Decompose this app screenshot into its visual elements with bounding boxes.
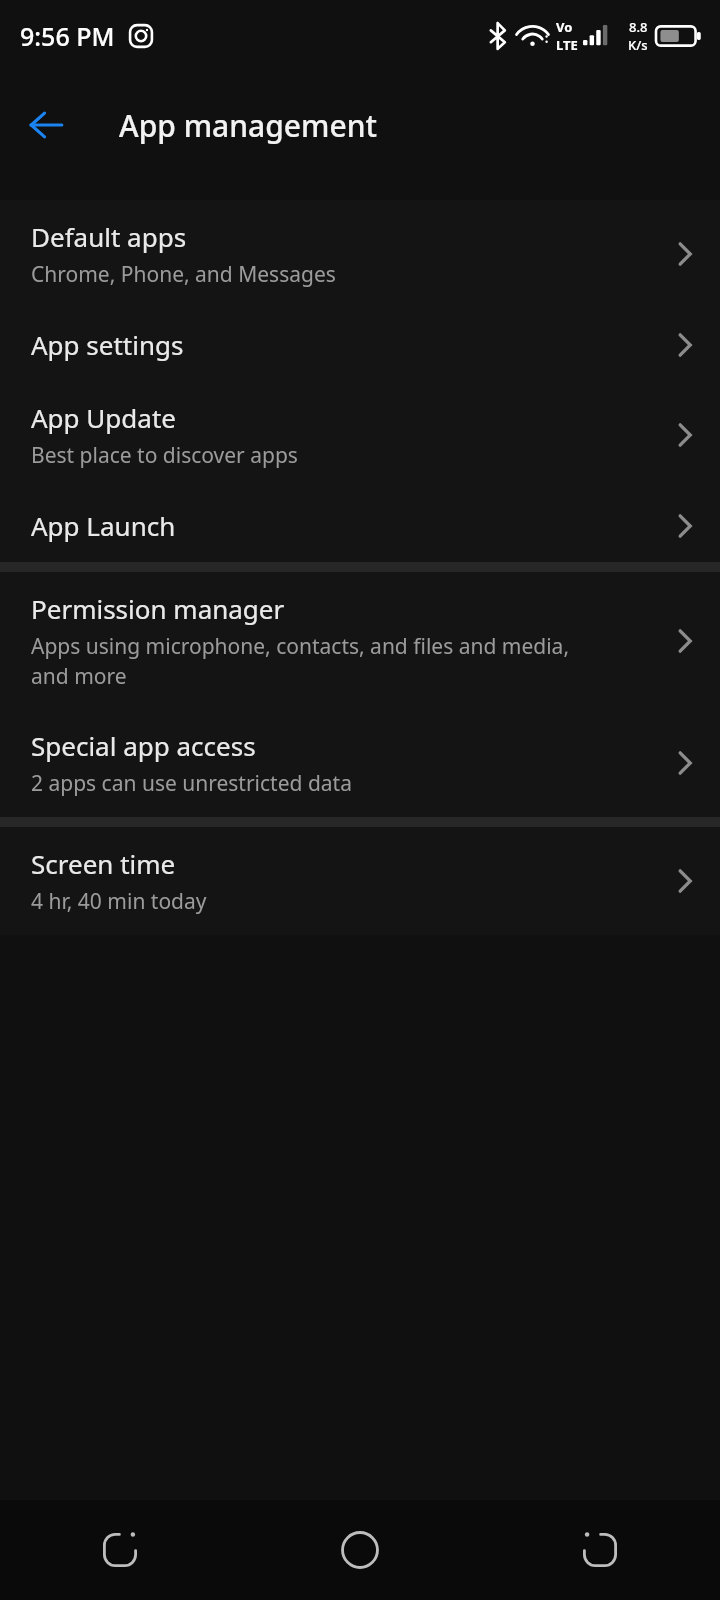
staticText: Vo xyxy=(556,18,573,36)
button[interactable]: Back xyxy=(480,1500,720,1600)
button[interactable]: Back xyxy=(14,93,78,157)
button[interactable]: Recent apps xyxy=(0,1500,240,1600)
staticText: App settings xyxy=(31,327,184,362)
staticText: Default apps xyxy=(31,219,187,254)
button[interactable]: App Update xyxy=(0,381,720,489)
staticText: Best place to discover apps xyxy=(31,441,298,470)
button[interactable]: Default apps xyxy=(0,200,720,308)
staticText: K/s xyxy=(628,36,648,54)
staticText: 2 apps can use unrestricted data xyxy=(31,769,352,798)
staticText: 9:56 PM xyxy=(20,19,115,53)
staticText: 8.8 xyxy=(629,18,648,36)
staticText: Permission manager xyxy=(31,591,285,626)
button[interactable]: Screen time xyxy=(0,827,720,935)
button[interactable]: Home xyxy=(240,1500,480,1600)
staticText: App Update xyxy=(31,400,176,435)
staticText: Screen time xyxy=(31,846,176,881)
staticText: 4 hr, 40 min today xyxy=(31,887,207,916)
staticText: App management xyxy=(119,105,377,146)
button[interactable]: Special app access xyxy=(0,709,720,817)
staticText: App Launch xyxy=(31,508,176,543)
button[interactable]: App Launch xyxy=(0,489,720,562)
button[interactable]: App settings xyxy=(0,308,720,381)
staticText: Apps using microphone, contacts, and fil… xyxy=(31,632,570,690)
staticText: Chrome, Phone, and Messages xyxy=(31,260,336,289)
staticText: Special app access xyxy=(31,728,256,763)
staticText: LTE xyxy=(556,36,578,54)
button[interactable]: Permission manager xyxy=(0,572,720,709)
